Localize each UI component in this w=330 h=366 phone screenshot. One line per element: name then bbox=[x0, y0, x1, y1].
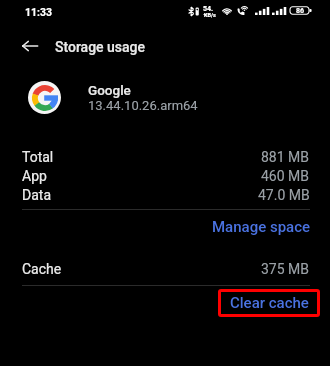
staticText: 881 MB bbox=[261, 149, 310, 165]
staticText: Data bbox=[22, 187, 51, 203]
staticText: Google bbox=[88, 82, 131, 98]
staticText: Total bbox=[22, 149, 54, 165]
staticText: Manage space bbox=[212, 218, 311, 236]
staticText: 460 MB bbox=[261, 168, 310, 184]
button[interactable]: Cache bbox=[0, 260, 330, 277]
staticText: 47.0 MB bbox=[258, 187, 310, 203]
staticText: 11:33 bbox=[25, 6, 53, 18]
staticText: KB/s bbox=[204, 12, 216, 18]
button[interactable]: Total bbox=[0, 148, 330, 165]
button[interactable]: Clear cache bbox=[218, 289, 320, 317]
button[interactable]: Manage space bbox=[212, 216, 311, 238]
button[interactable]: App bbox=[0, 167, 330, 184]
staticText: Cache bbox=[22, 261, 62, 277]
staticText: 375 MB bbox=[261, 261, 310, 277]
staticText: 13.44.10.26.arm64 bbox=[88, 98, 198, 113]
staticText: Storage usage bbox=[55, 39, 146, 55]
button[interactable]: Back bbox=[14, 30, 44, 60]
button[interactable]: Google bbox=[0, 78, 330, 116]
staticText: 86 bbox=[296, 7, 305, 15]
staticText: Clear cache bbox=[230, 294, 309, 312]
button[interactable]: Data bbox=[0, 186, 330, 203]
staticText: App bbox=[22, 168, 47, 184]
staticText: 54.0 bbox=[203, 5, 217, 15]
